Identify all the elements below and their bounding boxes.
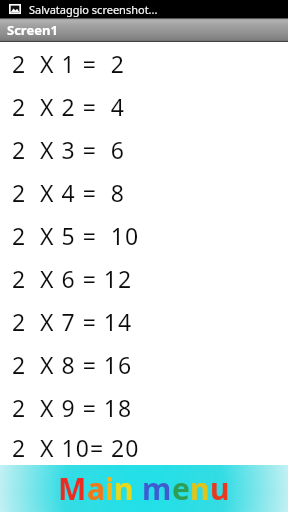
button[interactable]: 2 X 3 = 6 [0, 128, 288, 171]
button[interactable]: 2 X 7 = 14 [0, 300, 288, 343]
button[interactable]: 2 X 5 = 10 [0, 214, 288, 257]
button[interactable]: 2 X 9 = 18 [0, 386, 288, 429]
staticText: Salvataggio screenshot... [29, 2, 158, 17]
staticText: n [114, 468, 134, 509]
button[interactable]: 2 X 8 = 16 [0, 343, 288, 386]
staticText: a [87, 468, 105, 509]
staticText: i [105, 468, 114, 509]
staticText: u [210, 468, 230, 509]
button[interactable]: 2 X 2 = 4 [0, 85, 288, 128]
button[interactable]: 2 X 10= 20 [0, 429, 288, 465]
staticText: 2 X 7 = 14 [12, 306, 133, 337]
staticText: m [142, 468, 172, 509]
staticText: 2 X 6 = 12 [12, 263, 133, 294]
button[interactable]: 2 X 4 = 8 [0, 171, 288, 214]
button[interactable]: M [0, 465, 288, 512]
staticText: 2 X 4 = 8 [12, 177, 125, 208]
staticText: 2 X 8 = 16 [12, 349, 133, 380]
staticText: 2 X 9 = 18 [12, 392, 133, 423]
staticText: e [172, 468, 190, 509]
staticText: 2 X 3 = 6 [12, 134, 125, 165]
staticText: M [58, 468, 87, 509]
button[interactable]: 2 X 6 = 12 [0, 257, 288, 300]
staticText: 2 X 2 = 4 [12, 91, 125, 122]
button[interactable]: 2 X 1 = 2 [0, 42, 288, 85]
other: Screenshot saved [9, 3, 21, 15]
staticText: 2 X 5 = 10 [12, 220, 140, 251]
staticText: 2 X 1 = 2 [12, 48, 125, 79]
staticText: 2 X 10= 20 [12, 432, 140, 463]
staticText: Screen1 [7, 21, 58, 39]
staticText: n [190, 468, 210, 509]
